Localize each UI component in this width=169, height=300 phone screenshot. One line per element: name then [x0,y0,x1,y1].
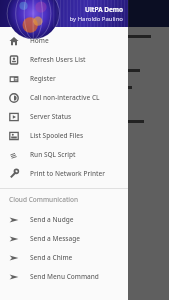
staticText: List Spooled Files [30,131,84,140]
staticText: Send a Message [30,234,81,243]
button[interactable]: Print to Network Printer [0,164,128,183]
staticText: Send a Chime [30,253,73,262]
staticText: Server Status [30,112,72,121]
button[interactable]: Send a Message [0,229,128,248]
button[interactable]: Refresh Users List [0,50,128,69]
button[interactable]: Send Menu Command [0,267,128,286]
staticText: Call non-interactive CL command [30,93,128,102]
button[interactable]: Send a Chime [0,248,128,267]
staticText: Print to Network Printer [30,169,105,178]
button[interactable]: Home [0,31,128,50]
staticText: by Haroldo Paulino [69,15,123,23]
staticText: Send Menu Command [30,272,99,281]
button[interactable]: Send a Nudge [0,210,128,229]
button[interactable]: List Spooled Files [0,126,128,145]
staticText: Cloud Communication [9,195,79,204]
staticText: Register [30,74,56,83]
button[interactable]: Run SQL Script [0,145,128,164]
staticText: Refresh Users List [30,55,86,64]
staticText: Send a Nudge [30,215,74,224]
staticText: UltPA Demo [85,5,123,14]
staticText: Home [30,36,49,45]
button[interactable]: Server Status [0,107,128,126]
button[interactable]: Register [0,69,128,88]
staticText: Run SQL Script [30,150,76,159]
button[interactable]: Call non-interactive CL command [0,88,128,107]
